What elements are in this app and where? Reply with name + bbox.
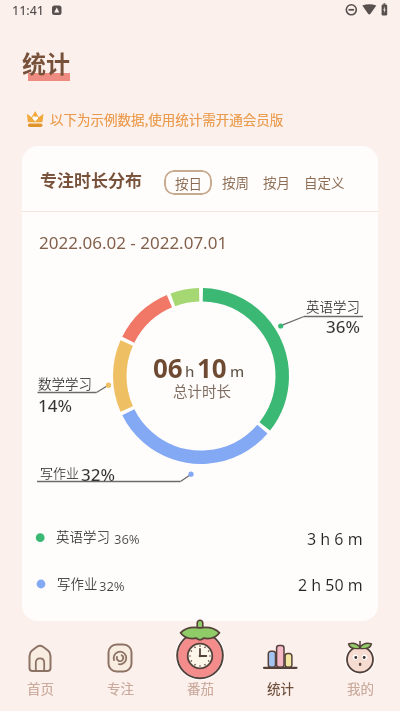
staticText: 自定义: [304, 172, 345, 192]
staticText: 按日: [175, 173, 202, 193]
staticText: 06: [153, 350, 183, 385]
staticText: 我的: [347, 678, 374, 698]
button[interactable]: 按日: [164, 170, 212, 195]
button[interactable]: 自定义: [303, 170, 346, 194]
button[interactable]: [0, 628, 80, 711]
staticText: 14%: [38, 394, 72, 417]
button[interactable]: 按月: [261, 170, 291, 194]
staticText: 英语学习: [306, 296, 360, 316]
staticText: 写作业: [57, 573, 98, 593]
staticText: 32%: [81, 463, 115, 486]
staticText: m: [230, 361, 245, 381]
staticText: 按周: [222, 172, 249, 192]
button[interactable]: [80, 628, 160, 711]
staticText: 总计时长: [173, 380, 231, 401]
staticText: 2 h 50 m: [298, 574, 363, 596]
staticText: 按月: [263, 172, 290, 192]
staticText: 3 h 6 m: [307, 528, 363, 550]
staticText: 36%: [326, 315, 360, 338]
button[interactable]: [160, 628, 240, 711]
staticText: 32%: [99, 577, 125, 595]
button[interactable]: [240, 628, 320, 711]
staticText: 专注: [107, 678, 134, 698]
staticText: 统计: [267, 678, 294, 698]
staticText: 数学学习: [38, 373, 92, 393]
staticText: 2022.06.02 - 2022.07.01: [39, 231, 228, 254]
staticText: 英语学习: [56, 526, 110, 546]
staticText: 统计: [22, 45, 70, 77]
button[interactable]: [320, 628, 400, 711]
staticText: 专注时长分布: [40, 167, 142, 192]
button[interactable]: [22, 105, 322, 133]
staticText: 10: [197, 350, 227, 385]
staticText: 首页: [27, 678, 54, 698]
button[interactable]: 按周: [220, 170, 250, 194]
staticText: h: [185, 361, 195, 381]
staticText: 11:41: [12, 2, 45, 19]
staticText: 以下为示例数据,使用统计需开通会员版: [50, 109, 284, 129]
staticText: 写作业: [40, 463, 80, 482]
staticText: 番茄: [187, 678, 214, 698]
staticText: 36%: [114, 530, 140, 548]
